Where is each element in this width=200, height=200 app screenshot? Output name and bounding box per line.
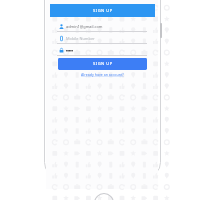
- button[interactable]: admin1@gmail.com: [57, 20, 147, 32]
- button[interactable]: Mobile Number: [57, 32, 147, 44]
- button[interactable]: Already have an account?: [81, 72, 124, 77]
- button[interactable]: [57, 44, 147, 56]
- button[interactable]: SIGN UP: [50, 4, 155, 17]
- button[interactable]: SIGN UP: [58, 58, 147, 70]
- staticText: admin1@gmail.com: [66, 24, 103, 29]
- staticText: Mobile Number: [66, 36, 95, 41]
- staticText: SIGN UP: [93, 8, 113, 14]
- staticText: SIGN UP: [93, 61, 113, 67]
